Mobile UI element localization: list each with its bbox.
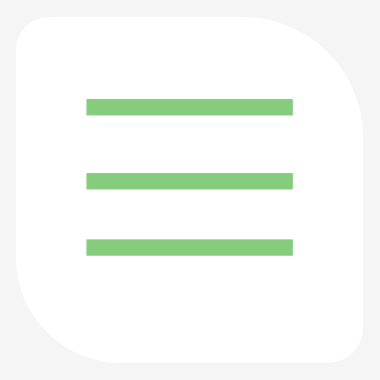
button[interactable]: Menu	[16, 17, 363, 363]
